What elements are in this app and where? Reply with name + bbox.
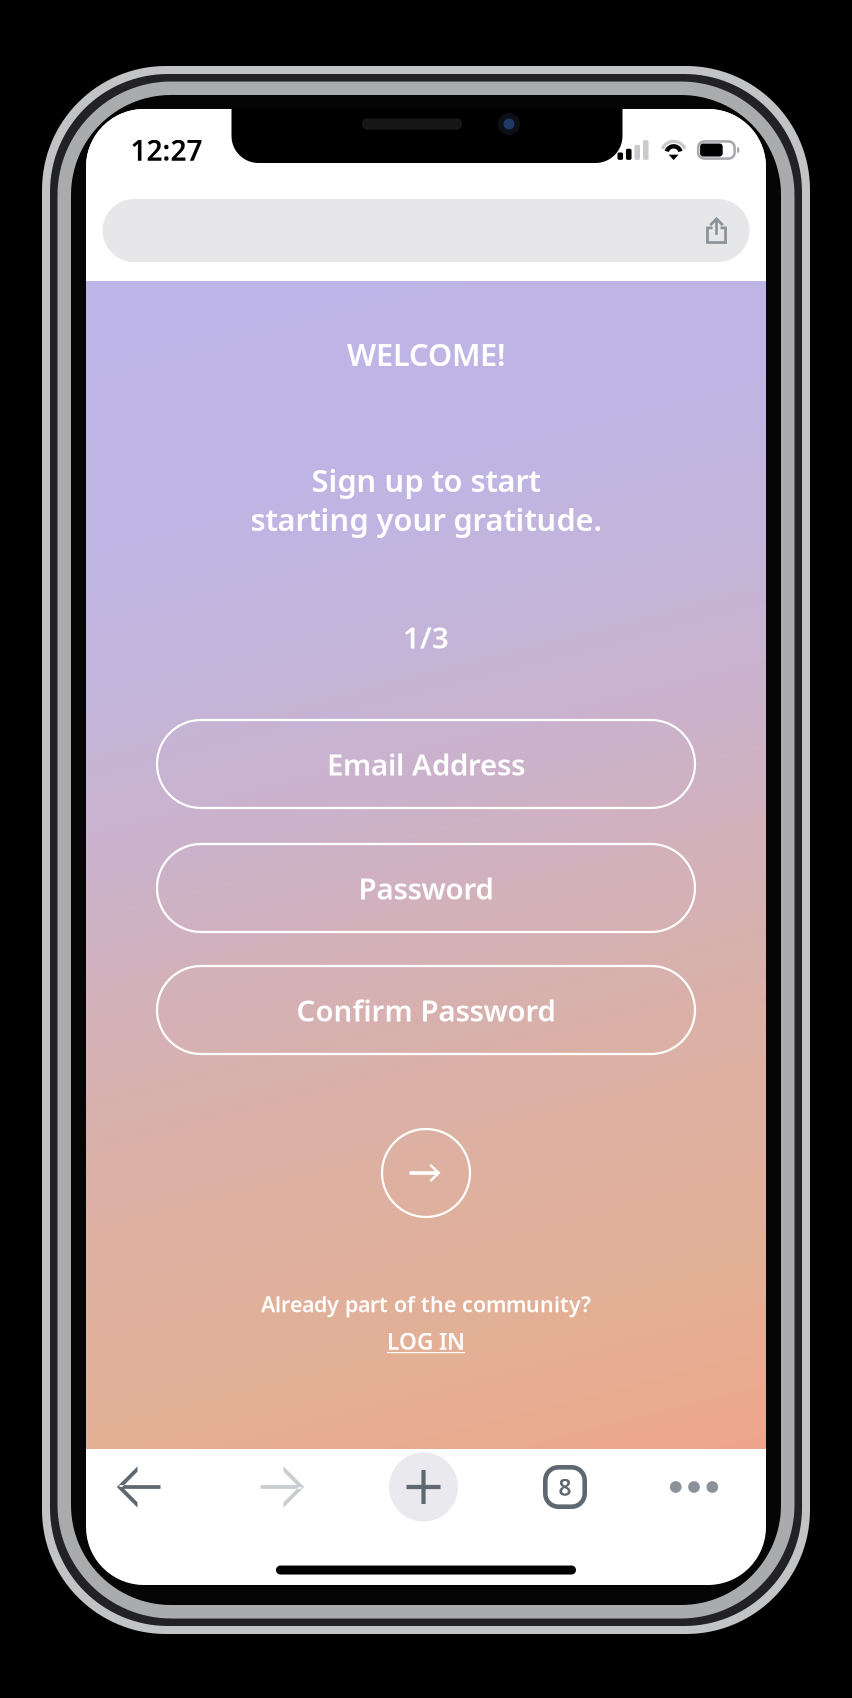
- button[interactable]: Email Address: [157, 720, 695, 808]
- staticText: starting your gratitude.: [250, 499, 601, 539]
- button[interactable]: Back: [109, 1456, 171, 1518]
- button[interactable]: Tabs: [534, 1456, 596, 1518]
- button[interactable]: Password: [157, 844, 695, 932]
- button[interactable]: LOG IN: [346, 1324, 506, 1358]
- button[interactable]: More: [663, 1456, 725, 1518]
- button[interactable]: Confirm Password: [157, 966, 695, 1054]
- staticText: 8: [558, 1472, 571, 1502]
- staticText: Already part of the community?: [261, 1290, 591, 1318]
- staticText: 12:27: [130, 131, 202, 169]
- staticText: LOG IN: [387, 1326, 465, 1356]
- staticText: Sign up to start: [311, 460, 540, 500]
- button[interactable]: Continue: [382, 1129, 470, 1217]
- staticText: Email Address: [327, 744, 525, 783]
- staticText: Confirm Password: [296, 990, 555, 1029]
- staticText: 1/3: [403, 617, 449, 656]
- button[interactable]: New Tab: [389, 1452, 458, 1521]
- staticText: WELCOME!: [347, 334, 505, 374]
- button[interactable]: Forward: [250, 1456, 312, 1518]
- button[interactable]: Address and Search: [102, 199, 749, 262]
- staticText: Password: [358, 868, 493, 907]
